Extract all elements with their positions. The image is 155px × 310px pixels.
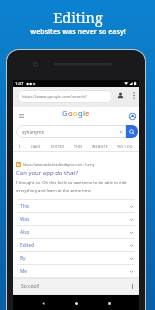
staticText: Can your app do that?	[16, 169, 79, 177]
staticText: o	[73, 108, 78, 118]
button[interactable]: I	[16, 141, 24, 151]
button[interactable]: Recents	[103, 297, 115, 309]
staticText: Was	[20, 216, 30, 223]
button[interactable]: THIS	[71, 141, 86, 151]
staticText: g	[78, 108, 83, 118]
button[interactable]: Home	[70, 297, 82, 309]
staticText: THIS	[74, 144, 83, 149]
staticText: HAVE	[31, 144, 41, 149]
staticText: EDITED	[51, 144, 65, 149]
staticText: synonyms	[22, 129, 44, 135]
staticText: l	[83, 108, 85, 118]
button[interactable]: YES I DO	[114, 141, 136, 151]
button[interactable]: Menu	[16, 110, 27, 121]
staticText: https://www.google.com/search?	[22, 94, 87, 100]
staticText: This	[20, 203, 30, 210]
staticText: Also	[20, 229, 30, 236]
button[interactable]: Search	[126, 125, 138, 138]
staticText: WEBSITE	[92, 144, 108, 149]
staticText: Editing	[53, 7, 103, 27]
staticText: Edited	[20, 242, 35, 249]
staticText: G	[62, 108, 68, 118]
button[interactable]: HAVE	[28, 141, 44, 151]
button[interactable]: Account	[115, 90, 125, 100]
staticText: I thought so. Oh this feels so awesome t…	[16, 180, 136, 193]
button[interactable]: https://www.google.com/search?	[18, 90, 112, 103]
staticText: So cool!	[21, 283, 40, 290]
button[interactable]: So cool!	[13, 279, 139, 294]
button[interactable]: Edited	[13, 238, 139, 251]
button[interactable]: Was	[13, 212, 139, 225]
button[interactable]: By	[13, 251, 139, 264]
staticText: By	[20, 255, 26, 262]
staticText: o	[68, 108, 73, 118]
staticText: Me	[20, 268, 28, 275]
button[interactable]: synonyms	[16, 125, 126, 138]
button[interactable]: More options	[129, 90, 139, 100]
button[interactable]: Also	[13, 225, 139, 238]
button[interactable]: Profile	[127, 111, 137, 121]
staticText: e	[85, 108, 90, 118]
button[interactable]: This	[13, 199, 139, 212]
button[interactable]: WEBSITE	[89, 141, 111, 151]
button[interactable]: Me	[13, 264, 139, 277]
staticText: https://www.websiteeditedbyme.com › funn…	[23, 162, 95, 167]
button[interactable]: Back	[37, 297, 49, 309]
staticText: I	[19, 144, 21, 149]
staticText: websites was never so easy!	[30, 27, 126, 37]
staticText: 1:37	[15, 81, 24, 87]
staticText: YES I DO	[117, 144, 133, 149]
button[interactable]: EDITED	[48, 141, 68, 151]
